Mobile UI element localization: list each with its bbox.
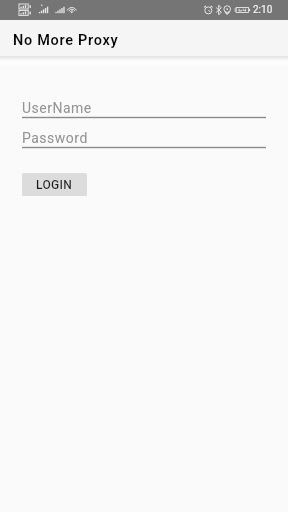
- button[interactable]: UserName: [22, 100, 266, 118]
- button[interactable]: Password: [22, 130, 266, 148]
- staticText: Password: [22, 130, 88, 146]
- staticText: UserName: [22, 100, 92, 116]
- staticText: 2:10: [253, 4, 273, 16]
- staticText: No More Proxy: [13, 32, 119, 49]
- button[interactable]: LOGIN: [22, 173, 87, 196]
- staticText: LOGIN: [36, 178, 73, 192]
